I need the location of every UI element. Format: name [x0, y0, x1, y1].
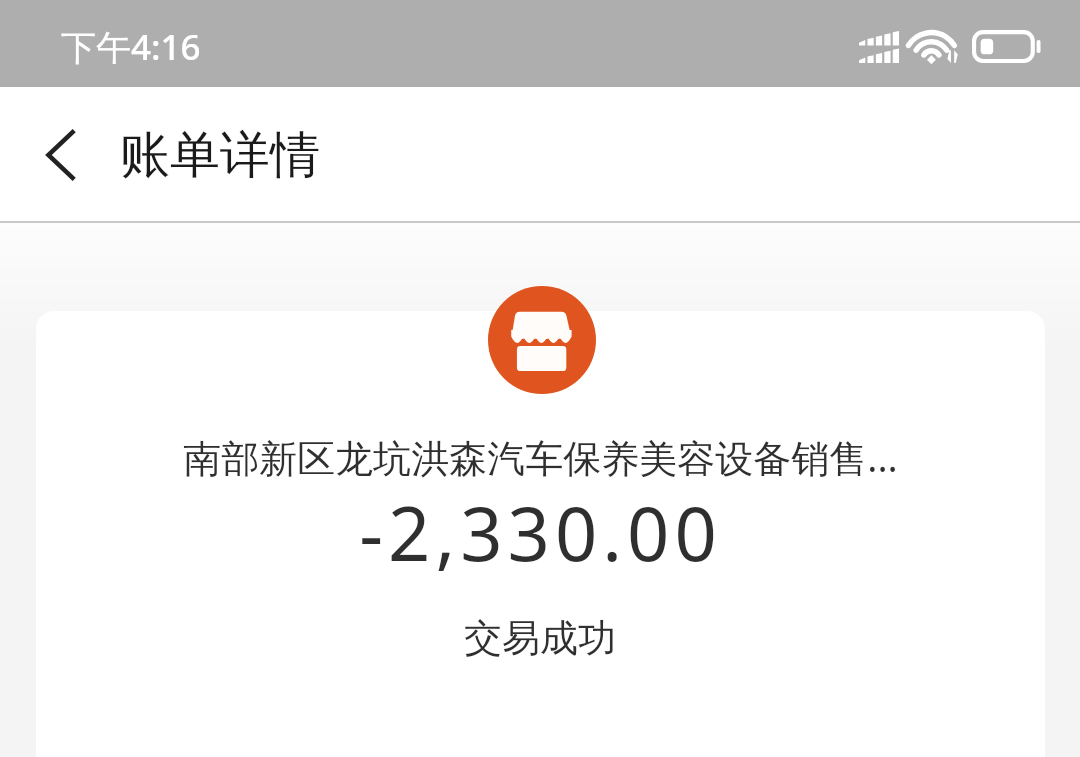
staticText: -2,330.00: [359, 482, 722, 583]
button[interactable]: Back: [0, 87, 110, 223]
staticText: 账单详情: [120, 124, 320, 187]
staticText: 下午4:16: [61, 23, 201, 71]
staticText: 南部新区龙坑洪森汽车保养美容设备销售...: [183, 431, 898, 483]
button[interactable]: 账单详情卡片: [36, 311, 1045, 757]
staticText: 交易成功: [464, 614, 616, 662]
